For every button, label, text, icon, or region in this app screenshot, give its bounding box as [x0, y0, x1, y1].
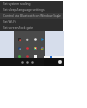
- button[interactable]: Set Wi-Fi: [0, 19, 63, 25]
- button[interactable]: [23, 45, 31, 52]
- button[interactable]: [31, 45, 39, 52]
- staticText: Set Wi-Fi: [3, 20, 16, 24]
- staticText: >: [57, 14, 60, 19]
- button[interactable]: [31, 54, 39, 58]
- button[interactable]: Tray icon 0: [20, 60, 25, 65]
- button[interactable]: [15, 45, 23, 52]
- staticText: Control via Bluetooth on Window Scale: [3, 14, 61, 18]
- button[interactable]: Set screen/lock gate: [0, 25, 63, 31]
- staticText: Set system scaling: [3, 2, 31, 6]
- button[interactable]: [39, 36, 45, 43]
- button[interactable]: Tray icon 2: [30, 60, 35, 65]
- button[interactable]: Set sleep/language settings: [0, 7, 63, 13]
- button[interactable]: [39, 45, 45, 52]
- staticText: Set sleep/language settings: [3, 8, 45, 12]
- button[interactable]: [15, 54, 23, 58]
- button[interactable]: [31, 36, 39, 43]
- button[interactable]: [23, 36, 31, 43]
- button[interactable]: Control via Bluetooth on Window Scale: [0, 13, 63, 19]
- button[interactable]: [23, 54, 31, 58]
- button[interactable]: Set system scaling: [0, 1, 63, 7]
- button[interactable]: [15, 36, 23, 43]
- staticText: Set screen/lock gate: [3, 26, 34, 30]
- button[interactable]: Tray icon 1: [25, 60, 30, 65]
